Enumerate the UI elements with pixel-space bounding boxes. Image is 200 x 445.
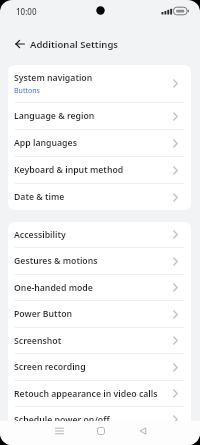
button[interactable]: One-handed mode [8,275,191,300]
button[interactable]: Retouch appearance in video calls [8,381,191,406]
button[interactable]: Power Button [8,301,191,327]
button[interactable]: Keyboard & input method [8,157,191,183]
button[interactable]: Screen recording [8,354,191,380]
staticText: Gestures & motions [14,255,172,267]
button[interactable] [12,36,28,52]
staticText: Screenshot [14,335,172,347]
button[interactable] [53,425,65,437]
button[interactable]: App languages [8,130,191,156]
staticText: Additional Settings [30,38,119,51]
staticText: App languages [14,137,172,149]
staticText: Screen recording [14,361,172,373]
button[interactable]: Accessibility [8,222,191,247]
staticText: Retouch appearance in video calls [14,388,172,400]
staticText: Keyboard & input method [14,164,172,176]
staticText: Power Button [14,308,172,320]
staticText: One-handed mode [14,282,172,294]
button[interactable]: Gestures & motions [8,248,191,274]
button[interactable]: System navigation [8,65,191,102]
button[interactable]: Date & time [8,184,191,210]
button[interactable] [137,425,149,437]
staticText: Language & region [14,110,172,122]
button[interactable]: Screenshot [8,328,191,353]
staticText: System navigation [14,72,93,84]
button[interactable] [95,425,107,437]
button[interactable]: Schedule power on/off [8,407,191,432]
staticText: Schedule power on/off [14,414,172,426]
staticText: Accessibility [14,229,172,241]
staticText: 10:00 [16,6,37,17]
staticText: Date & time [14,191,172,203]
staticText: Buttons [14,86,40,96]
button[interactable]: Language & region [8,103,191,129]
